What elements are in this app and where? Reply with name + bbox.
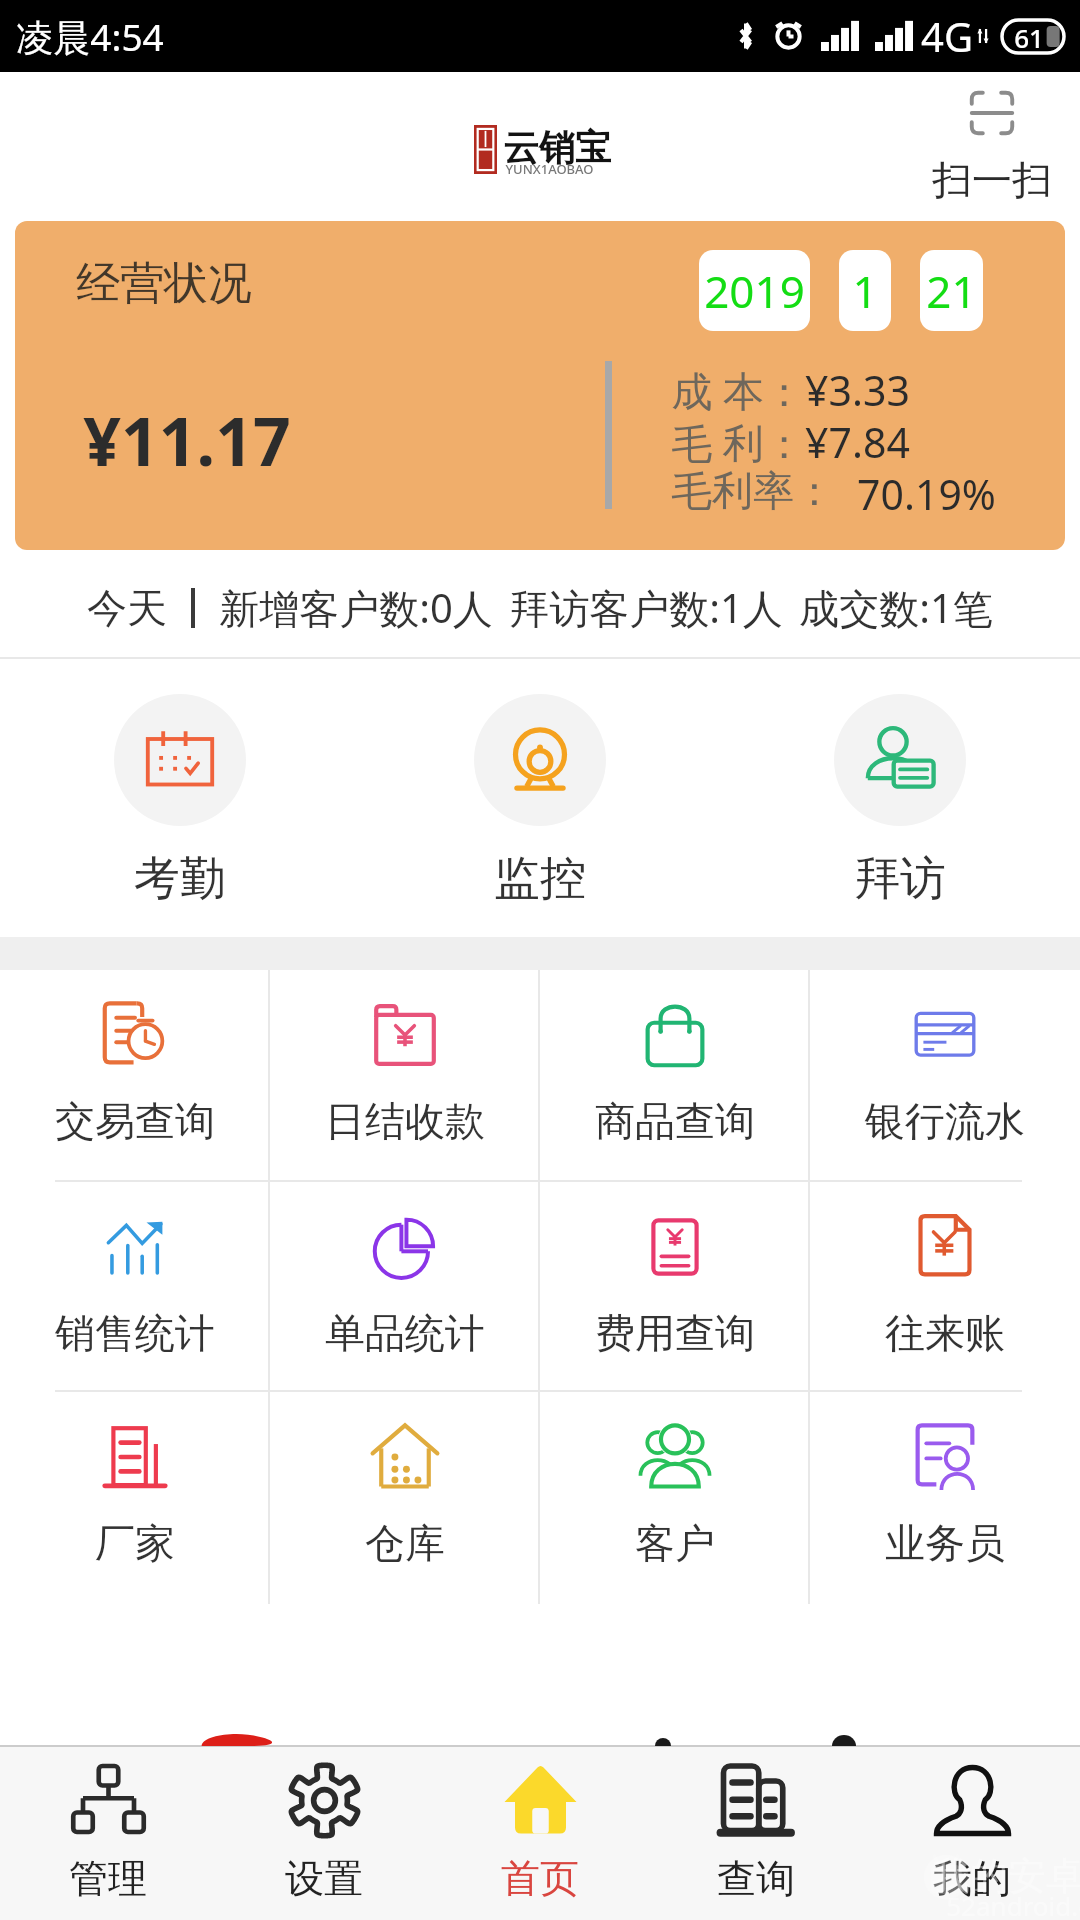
staticText: 销售统计 bbox=[55, 1308, 215, 1358]
button[interactable]: 管理 bbox=[0, 1747, 216, 1920]
staticText: 业务员 bbox=[885, 1518, 1005, 1568]
staticText: YUNX1AOBAO bbox=[505, 160, 594, 178]
staticText: 成 本： bbox=[671, 362, 805, 418]
staticText: 日结收款 bbox=[325, 1096, 485, 1146]
button[interactable]: 查询 bbox=[648, 1747, 864, 1920]
button[interactable]: 单品统计 bbox=[270, 1182, 540, 1392]
staticText: 监控 bbox=[494, 850, 586, 908]
button[interactable]: 银行流水 bbox=[810, 970, 1080, 1182]
staticText: 客户 bbox=[635, 1518, 715, 1568]
staticText: 费用查询 bbox=[595, 1308, 755, 1358]
staticText: 我的安卓 bbox=[932, 1852, 1080, 1900]
button[interactable]: 费用查询 bbox=[540, 1182, 810, 1392]
button[interactable]: 扫一扫 bbox=[918, 90, 1066, 205]
staticText: 新增客户数:0人 bbox=[219, 580, 493, 635]
button[interactable]: 首页 bbox=[432, 1747, 648, 1920]
staticText: 仓库 bbox=[365, 1518, 445, 1568]
button[interactable]: 监控 bbox=[360, 659, 720, 937]
staticText: 首页 bbox=[501, 1854, 579, 1903]
staticText: ¥11.17 bbox=[83, 395, 291, 485]
button[interactable]: 客户 bbox=[540, 1392, 810, 1604]
staticText: 单品统计 bbox=[325, 1308, 485, 1358]
button[interactable]: 商品查询 bbox=[540, 970, 810, 1182]
staticText: 交易查询 bbox=[55, 1096, 215, 1146]
staticText: 经营状况 bbox=[76, 256, 252, 311]
button[interactable]: 我的 bbox=[864, 1747, 1080, 1920]
staticText: 扫一扫 bbox=[932, 155, 1052, 205]
staticText: 往来账 bbox=[885, 1308, 1005, 1358]
staticText: 2019 bbox=[704, 261, 805, 321]
staticText: 今天 bbox=[87, 583, 167, 633]
button[interactable]: 业务员 bbox=[810, 1392, 1080, 1604]
button[interactable]: 经营状况 bbox=[15, 221, 1065, 550]
staticText: 查询 bbox=[717, 1854, 795, 1903]
staticText: 凌晨4:54 bbox=[16, 11, 164, 62]
button[interactable]: 仓库 bbox=[270, 1392, 540, 1604]
button[interactable]: 日结收款 bbox=[270, 970, 540, 1182]
button[interactable]: 拜访 bbox=[720, 659, 1080, 937]
button[interactable]: 厂家 bbox=[0, 1392, 270, 1604]
staticText: 毛 利： bbox=[671, 414, 805, 470]
staticText: 管理 bbox=[69, 1854, 147, 1903]
button[interactable]: 1 bbox=[839, 250, 891, 331]
staticText: 成交数:1笔 bbox=[799, 580, 993, 635]
staticText: ¥7.84 bbox=[805, 414, 910, 470]
button[interactable]: 设置 bbox=[216, 1747, 432, 1920]
staticText: 拜访 bbox=[854, 850, 946, 908]
button[interactable]: 考勤 bbox=[0, 659, 360, 937]
staticText: 21 bbox=[926, 261, 977, 321]
staticText: 设置 bbox=[285, 1854, 363, 1903]
staticText: 商品查询 bbox=[595, 1096, 755, 1146]
button[interactable]: 交易查询 bbox=[0, 970, 270, 1182]
button[interactable]: 21 bbox=[920, 250, 983, 331]
staticText: 70.19% bbox=[857, 466, 996, 522]
staticText: 4G bbox=[921, 9, 973, 63]
staticText: 52android.com bbox=[946, 1888, 1080, 1920]
staticText: 毛利率： bbox=[671, 466, 835, 518]
staticText: 拜访客户数:1人 bbox=[509, 580, 783, 635]
button[interactable]: 2019 bbox=[699, 250, 810, 331]
button[interactable]: 销售统计 bbox=[0, 1182, 270, 1392]
staticText: 1 bbox=[852, 261, 878, 321]
staticText: 61 bbox=[1014, 20, 1044, 53]
staticText: 厂家 bbox=[95, 1518, 175, 1568]
staticText: 银行流水 bbox=[865, 1096, 1025, 1146]
staticText: 我的 bbox=[933, 1854, 1011, 1903]
staticText: ¥3.33 bbox=[805, 362, 910, 418]
staticText: 云销宝 bbox=[503, 125, 611, 170]
button[interactable]: 往来账 bbox=[810, 1182, 1080, 1392]
staticText: 考勤 bbox=[134, 850, 226, 908]
